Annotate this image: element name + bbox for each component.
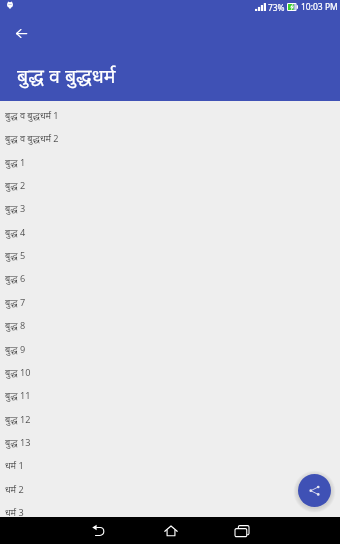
button[interactable]: Navigate up	[10, 22, 33, 45]
button[interactable]: बुद्ध 9	[0, 343, 340, 366]
staticText: बुद्ध 11	[5, 389, 31, 401]
button[interactable]: बुद्ध 6	[0, 272, 340, 295]
button[interactable]: Back	[85, 517, 112, 544]
button[interactable]: बुद्ध 7	[0, 296, 340, 319]
button[interactable]: बुद्ध 10	[0, 366, 340, 389]
staticText: बुद्ध 4	[5, 226, 26, 238]
staticText: बुद्ध व बुद्धधर्म 1	[5, 109, 59, 121]
button[interactable]: बुद्ध व बुद्धधर्म 2	[0, 132, 340, 155]
button[interactable]: बुद्ध 8	[0, 319, 340, 342]
button[interactable]: बुद्ध 12	[0, 413, 340, 436]
button[interactable]: बुद्ध 11	[0, 389, 340, 412]
staticText: बुद्ध 3	[5, 202, 26, 214]
staticText: बुद्ध व बुद्धधर्म	[17, 62, 116, 89]
button[interactable]: बुद्ध 4	[0, 226, 340, 249]
staticText: धर्म 2	[5, 483, 24, 495]
staticText: बुद्ध 1	[5, 156, 26, 168]
button[interactable]: बुद्ध 5	[0, 249, 340, 272]
staticText: बुद्ध 8	[5, 319, 26, 331]
button[interactable]: बुद्ध व बुद्धधर्म 1	[0, 109, 340, 132]
button[interactable]: बुद्ध 1	[0, 156, 340, 179]
staticText: धर्म 3	[5, 506, 24, 518]
staticText: बुद्ध 12	[5, 413, 31, 425]
staticText: बुद्ध 10	[5, 366, 31, 378]
button[interactable]: Recent apps	[228, 516, 255, 543]
button[interactable]: धर्म 2	[0, 483, 340, 506]
staticText: बुद्ध 6	[5, 272, 26, 284]
staticText: 10:03 PM	[301, 1, 338, 13]
staticText: बुद्ध व बुद्धधर्म 2	[5, 132, 59, 144]
staticText: बुद्ध 13	[5, 436, 31, 448]
staticText: धर्म 1	[5, 459, 24, 471]
button[interactable]: Home	[157, 517, 184, 544]
button[interactable]: बुद्ध 13	[0, 436, 340, 459]
staticText: बुद्ध 2	[5, 179, 26, 191]
button[interactable]: धर्म 3	[0, 506, 340, 529]
staticText: बुद्ध 7	[5, 296, 26, 308]
button[interactable]: Share	[298, 474, 331, 507]
staticText: बुद्ध 5	[5, 249, 26, 261]
staticText: बुद्ध 9	[5, 343, 26, 355]
button[interactable]: बुद्ध 2	[0, 179, 340, 202]
staticText: 73%	[268, 2, 285, 13]
button[interactable]: धर्म 1	[0, 459, 340, 482]
button[interactable]: बुद्ध 3	[0, 202, 340, 225]
